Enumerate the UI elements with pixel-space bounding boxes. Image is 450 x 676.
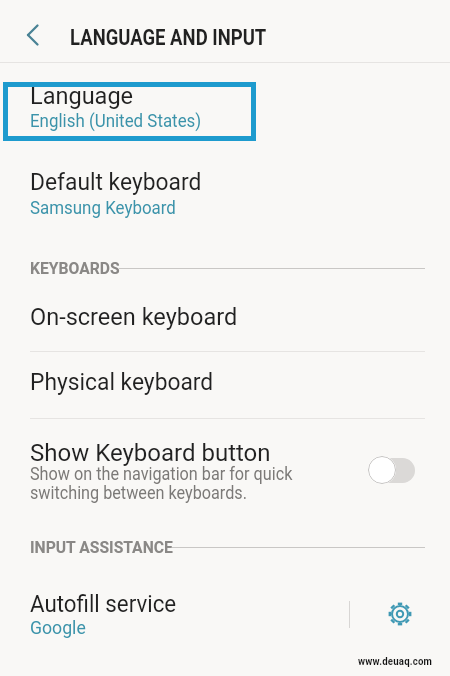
- button[interactable]: Language: [3, 82, 256, 141]
- button[interactable]: [384, 598, 416, 630]
- button[interactable]: Physical keyboard: [0, 352, 450, 418]
- staticText: Physical keyboard: [30, 368, 213, 396]
- staticText: Show Keyboard button: [30, 439, 271, 467]
- button[interactable]: On-screen keyboard: [0, 284, 450, 351]
- staticText: Default keyboard: [30, 168, 202, 196]
- staticText: KEYBOARDS: [30, 259, 120, 278]
- staticText: Language: [30, 82, 134, 110]
- button[interactable]: LANGUAGE AND INPUT: [0, 0, 450, 62]
- staticText: www.deuaq.com: [358, 654, 433, 667]
- staticText: Samsung Keyboard: [30, 196, 176, 218]
- staticText: Autofill service: [30, 590, 177, 618]
- staticText: On-screen keyboard: [30, 303, 238, 331]
- button[interactable]: Autofill service: [0, 576, 350, 652]
- staticText: Show on the navigation bar for quick: [30, 463, 293, 484]
- button[interactable]: Show Keyboard button: [0, 419, 450, 519]
- staticText: Google: [30, 616, 86, 638]
- button[interactable]: Default keyboard: [0, 155, 450, 231]
- staticText: switching between keyboards.: [30, 482, 248, 503]
- staticText: LANGUAGE AND INPUT: [70, 25, 267, 50]
- staticText: English (United States): [30, 109, 202, 131]
- staticText: INPUT ASSISTANCE: [30, 538, 173, 557]
